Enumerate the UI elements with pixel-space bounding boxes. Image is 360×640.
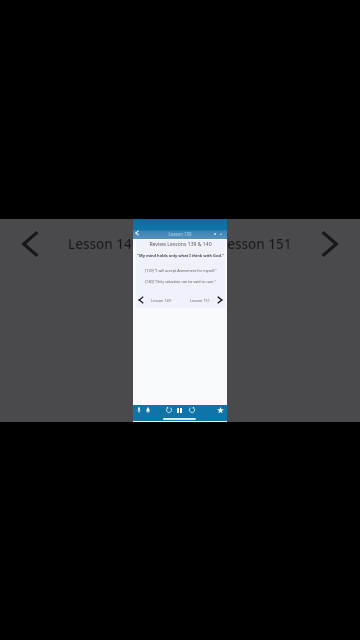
- button[interactable]: Lesson 151: [220, 235, 292, 253]
- button[interactable]: Lesson 149: [151, 298, 171, 303]
- staticText: Lesson 150: [133, 231, 227, 237]
- button[interactable]: Previous lesson: [12, 226, 48, 262]
- button[interactable]: Notifications: [143, 405, 153, 415]
- button[interactable]: Lesson 151: [190, 298, 210, 303]
- button[interactable]: Pause: [175, 405, 185, 415]
- button[interactable]: Microphone: [134, 405, 144, 415]
- button[interactable]: Previous lesson: [135, 294, 147, 306]
- button[interactable]: Lesson 149: [68, 235, 140, 253]
- button[interactable]: Favourite: [215, 405, 225, 415]
- button[interactable]: Rewind 10 seconds: [164, 405, 174, 415]
- button[interactable]: Cast: [213, 232, 216, 235]
- button[interactable]: Forward 10 seconds: [187, 405, 197, 415]
- staticText: [139] "I will accept Atonement for mysel…: [145, 268, 217, 273]
- staticText: [140] "Only salvation can be said to cur…: [145, 279, 216, 284]
- button[interactable]: Back: [132, 228, 142, 238]
- button[interactable]: Next lesson: [312, 226, 348, 262]
- button[interactable]: Next lesson: [214, 294, 226, 306]
- staticText: Review Lessons 139 & 140: [149, 241, 212, 248]
- staticText: "My mind holds only what I think with Go…: [137, 253, 224, 258]
- button[interactable]: More options: [219, 232, 222, 235]
